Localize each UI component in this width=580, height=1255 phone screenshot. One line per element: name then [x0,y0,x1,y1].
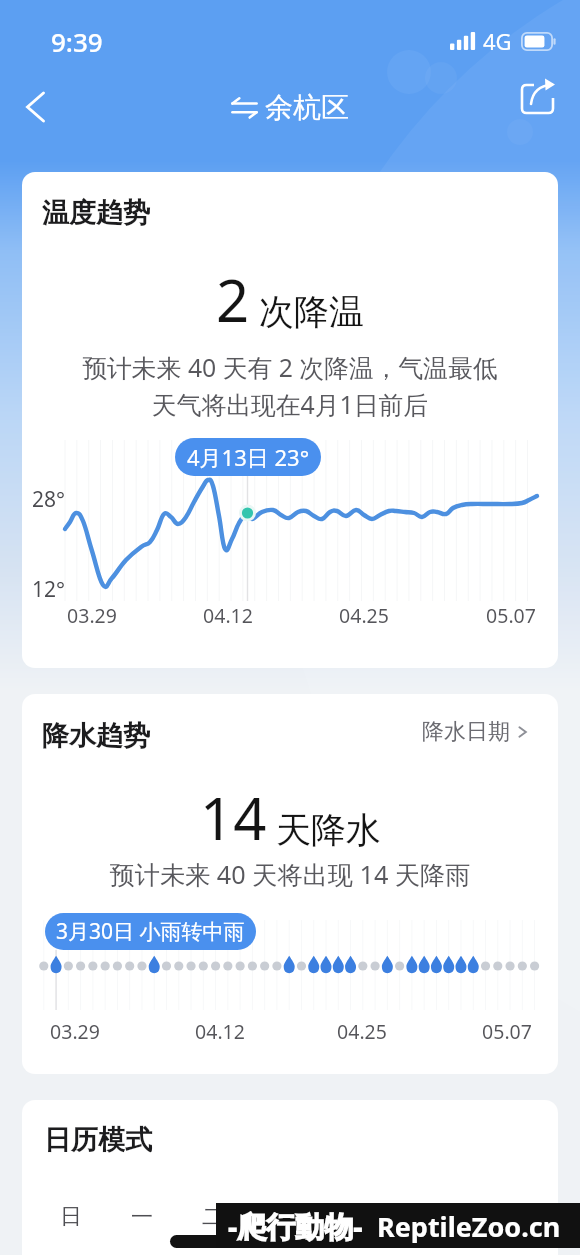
staticText: 03.29 [30,1018,120,1045]
staticText: 六 [486,1203,508,1231]
button[interactable]: 4月13日 23° [175,438,321,476]
button[interactable]: Share [514,82,564,132]
staticText: 日 [60,1203,82,1231]
staticText: 04.25 [319,602,409,629]
staticText: 四 [344,1203,366,1231]
staticText: 4月13日 23° [187,442,310,472]
staticText: ReptileZoo.cn [377,1208,561,1245]
staticText: 04.12 [175,1018,265,1045]
button[interactable]: 降水日期 [418,716,533,748]
staticText: 04.25 [317,1018,407,1045]
staticText: 二 [202,1203,224,1231]
staticText: 12° [32,575,66,604]
staticText: 日历模式 [44,1123,152,1157]
staticText: 天降水 [276,808,381,852]
staticText: 05.07 [466,602,556,629]
staticText: 05.07 [462,1018,552,1045]
staticText: 03.29 [47,602,137,629]
staticText: 降水趋势 [42,719,150,753]
staticText: 4G [483,26,512,56]
staticText: 余杭区 [265,90,349,125]
staticText: 预计未来 40 天将出现 14 天降雨 [22,857,558,891]
staticText: 9:39 [51,24,103,59]
staticText: 14 [200,778,267,857]
staticText: 2 [216,260,250,339]
staticText: 次降温 [259,290,364,334]
staticText: 04.12 [183,602,273,629]
staticText: 28° [32,485,66,514]
staticText: 温度趋势 [42,196,150,230]
button[interactable]: Back [10,81,62,133]
staticText: 预计未来 40 天有 2 次降温，气温最低 天气将出现在4月1日前后 [22,350,558,422]
staticText: 降水日期 [422,718,510,746]
button[interactable]: 3月30日 小雨转中雨 [45,913,256,950]
staticText: -爬行動物- [228,1206,363,1246]
staticText: 三 [273,1203,295,1231]
staticText: 一 [131,1203,153,1231]
staticText: 五 [415,1203,437,1231]
staticText: 3月30日 小雨转中雨 [56,917,245,946]
